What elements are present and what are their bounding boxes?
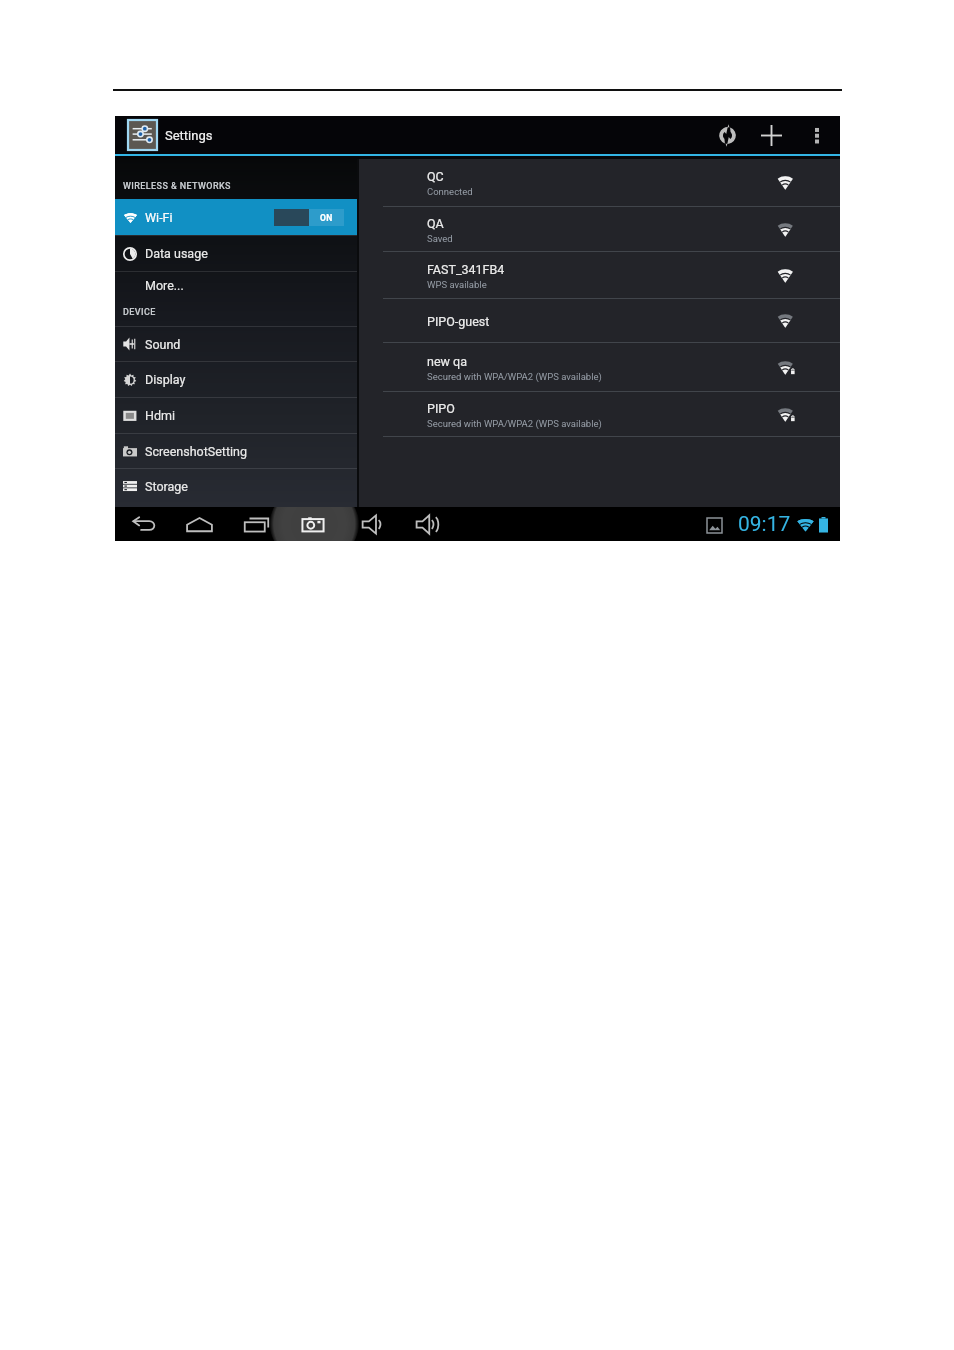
button[interactable]: Volume down: [353, 507, 391, 541]
button[interactable]: Recents: [237, 507, 275, 541]
button[interactable]: Hdmi: [115, 398, 357, 433]
button[interactable]: Volume up: [408, 507, 446, 541]
button[interactable]: FAST_341FB4: [359, 252, 840, 299]
button[interactable]: Screenshot captured: [704, 515, 724, 535]
staticText: More...: [145, 278, 184, 293]
button[interactable]: ScreenshotSetting: [115, 434, 357, 468]
staticText: DEVICE: [123, 307, 156, 318]
button[interactable]: More options: [798, 116, 836, 154]
staticText: QA: [427, 216, 444, 231]
staticText: PIPO-guest: [427, 314, 490, 329]
button[interactable]: new qa: [359, 343, 840, 392]
staticText: QC: [427, 169, 444, 184]
staticText: FAST_341FB4: [427, 262, 505, 277]
staticText: new qa: [427, 354, 467, 369]
staticText: Data usage: [145, 246, 208, 261]
button[interactable]: Home: [180, 507, 218, 541]
staticText: ScreenshotSetting: [145, 444, 247, 459]
staticText: Wi-Fi: [145, 210, 173, 225]
button[interactable]: More...: [115, 272, 357, 299]
staticText: Secured with WPA/WPA2 (WPS available): [427, 418, 602, 429]
button[interactable]: Data usage: [115, 236, 357, 271]
button[interactable]: Wi-Fi on: [274, 209, 344, 226]
button[interactable]: QC: [359, 159, 840, 207]
button[interactable]: Sound: [115, 327, 357, 361]
button[interactable]: Wi-Fi: [115, 199, 357, 235]
staticText: Settings: [165, 128, 213, 143]
staticText: Sound: [145, 337, 181, 352]
staticText: Secured with WPA/WPA2 (WPS available): [427, 371, 602, 382]
staticText: 09:17: [738, 512, 791, 537]
staticText: Display: [145, 372, 186, 387]
staticText: Hdmi: [145, 408, 175, 423]
button[interactable]: Back: [125, 507, 163, 541]
button[interactable]: Settings app: [126, 119, 158, 151]
button[interactable]: PIPO-guest: [359, 299, 840, 343]
button[interactable]: Display: [115, 362, 357, 397]
staticText: WPS available: [427, 279, 487, 290]
button[interactable]: QA: [359, 207, 840, 252]
button[interactable]: Screenshot: [294, 507, 332, 541]
button[interactable]: Scan: [708, 116, 746, 154]
staticText: Saved: [427, 233, 453, 244]
staticText: Connected: [427, 186, 473, 197]
button[interactable]: Add network: [752, 116, 790, 154]
button[interactable]: Storage: [115, 469, 357, 503]
staticText: PIPO: [427, 401, 455, 416]
staticText: Storage: [145, 479, 188, 494]
staticText: ON: [320, 213, 333, 223]
staticText: WIRELESS & NETWORKS: [123, 181, 231, 192]
button[interactable]: PIPO: [359, 392, 840, 437]
